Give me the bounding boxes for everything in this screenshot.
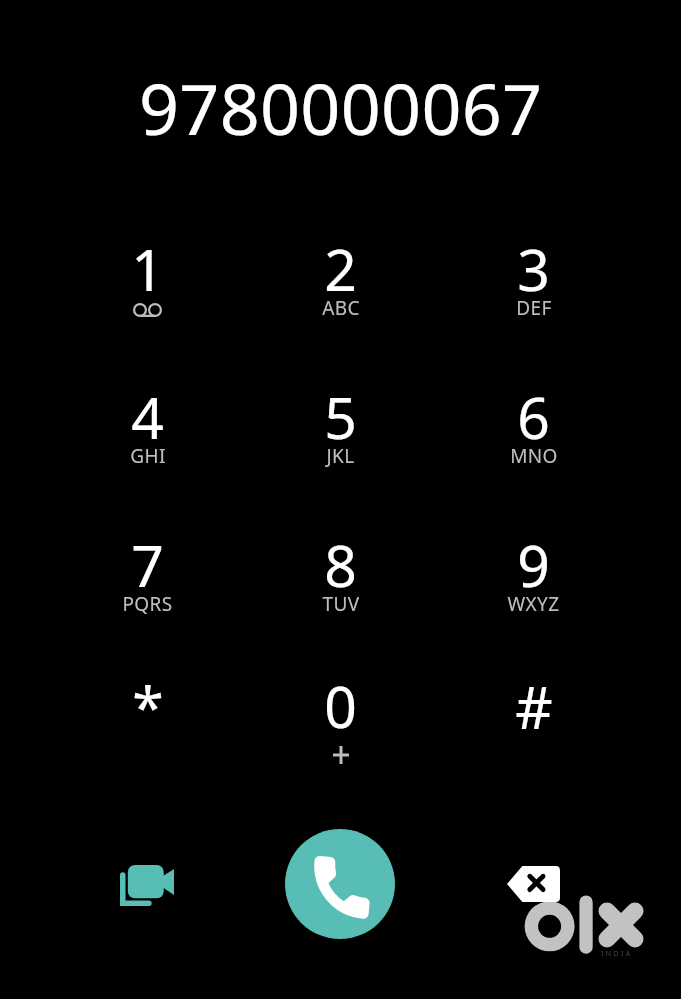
button[interactable]: Video call: [111, 849, 183, 921]
staticText: 7: [131, 526, 164, 604]
staticText: 6: [517, 378, 550, 456]
staticText: MNO: [510, 443, 558, 469]
staticText: *: [132, 667, 164, 745]
staticText: 1: [131, 230, 164, 308]
staticText: 4: [131, 378, 164, 456]
staticText: 9: [517, 526, 550, 604]
staticText: 5: [324, 378, 357, 456]
staticText: 0: [324, 667, 357, 745]
staticText: TUV: [322, 591, 360, 617]
button[interactable]: 3: [437, 236, 630, 356]
staticText: DEF: [516, 295, 552, 321]
button[interactable]: 7: [51, 532, 244, 652]
staticText: 9780000067: [139, 60, 543, 155]
button[interactable]: 0: [244, 673, 437, 793]
button[interactable]: 8: [244, 532, 437, 652]
button[interactable]: *: [51, 673, 244, 793]
staticText: I N D I A: [601, 949, 631, 959]
button[interactable]: 9780000067: [0, 60, 681, 155]
staticText: WXYZ: [507, 591, 560, 617]
staticText: 8: [324, 526, 357, 604]
button[interactable]: #: [437, 673, 630, 793]
button[interactable]: 4: [51, 384, 244, 504]
button[interactable]: 2: [244, 236, 437, 356]
button[interactable]: 9: [437, 532, 630, 652]
button[interactable]: 1: [51, 236, 244, 356]
staticText: GHI: [130, 443, 166, 469]
staticText: 2: [324, 230, 357, 308]
button[interactable]: Backspace: [497, 848, 569, 920]
staticText: JKL: [326, 443, 355, 469]
button[interactable]: 5: [244, 384, 437, 504]
staticText: ABC: [322, 295, 360, 321]
staticText: PQRS: [122, 591, 173, 617]
staticText: 3: [517, 230, 550, 308]
staticText: #: [515, 667, 553, 746]
button[interactable]: Call: [285, 829, 395, 939]
button[interactable]: 6: [437, 384, 630, 504]
